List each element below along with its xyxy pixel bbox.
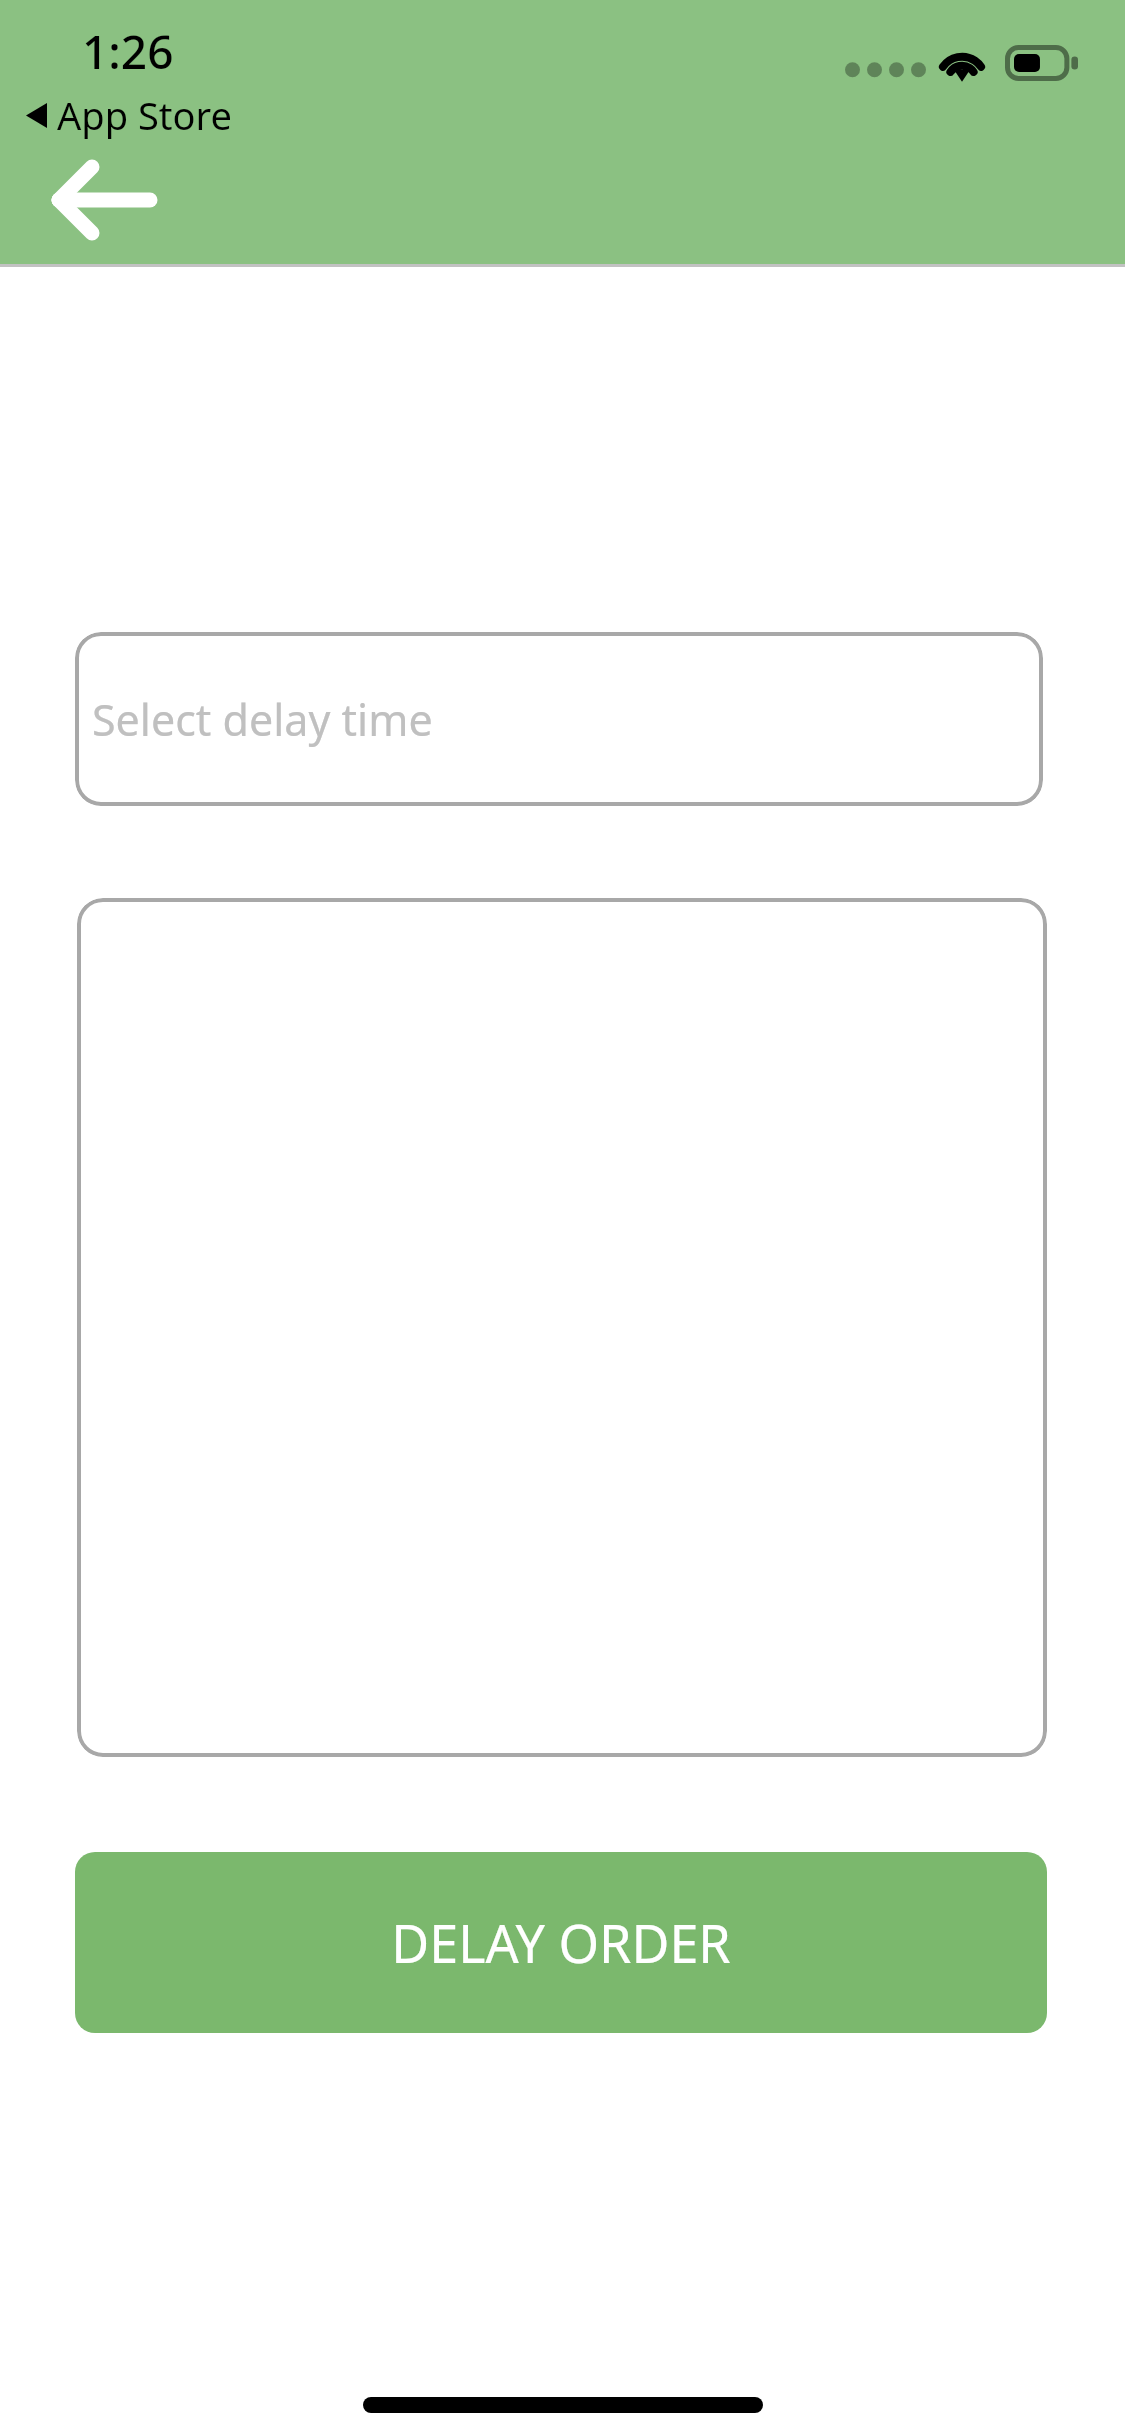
staticText: App Store: [57, 89, 232, 141]
staticText: DELAY ORDER: [391, 1907, 731, 1978]
button[interactable]: Back: [26, 148, 180, 252]
staticText: Select delay time: [92, 690, 433, 749]
button[interactable]: DELAY ORDER: [75, 1852, 1047, 2033]
button[interactable]: Select delay time: [75, 632, 1043, 806]
button[interactable]: [77, 898, 1047, 1757]
button[interactable]: Back to App Store: [26, 89, 232, 141]
staticText: 1:26: [82, 20, 174, 83]
